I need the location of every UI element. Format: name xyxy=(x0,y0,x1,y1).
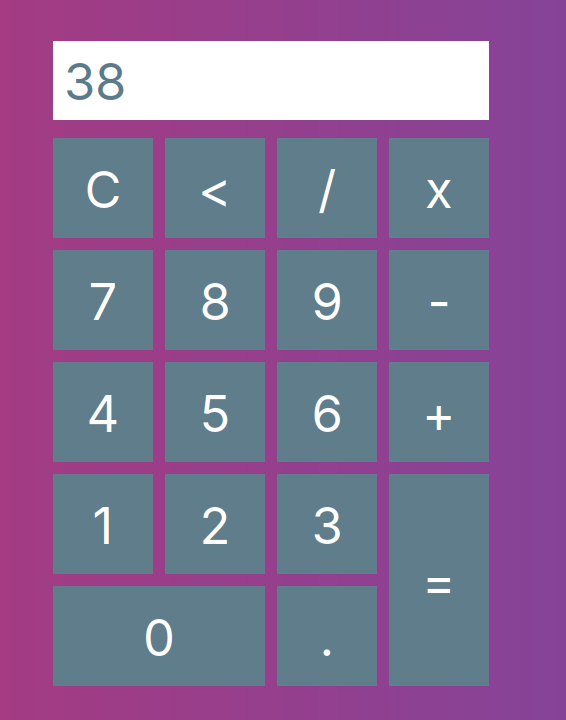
staticText: 38 xyxy=(64,51,126,112)
staticText: . xyxy=(319,607,334,668)
staticText: 5 xyxy=(199,383,230,444)
button[interactable]: + xyxy=(389,362,489,462)
button[interactable]: x xyxy=(389,138,489,238)
staticText: 0 xyxy=(143,607,175,668)
button[interactable]: 9 xyxy=(277,250,377,350)
staticText: 4 xyxy=(86,383,119,444)
button[interactable]: 8 xyxy=(165,250,265,350)
button[interactable]: < xyxy=(165,138,265,238)
staticText: / xyxy=(318,159,336,220)
button[interactable]: - xyxy=(389,250,489,350)
staticText: 1 xyxy=(92,495,113,556)
staticText: 9 xyxy=(311,271,342,332)
staticText: = xyxy=(422,551,456,612)
button[interactable]: 1 xyxy=(53,474,153,574)
staticText: 7 xyxy=(88,271,117,332)
staticText: + xyxy=(422,383,456,444)
button[interactable]: C xyxy=(53,138,153,238)
button[interactable]: / xyxy=(277,138,377,238)
staticText: - xyxy=(427,271,450,332)
staticText: 2 xyxy=(199,495,230,556)
staticText: 3 xyxy=(311,495,342,556)
staticText: 8 xyxy=(199,271,230,332)
staticText: x xyxy=(425,159,453,220)
staticText: 6 xyxy=(311,383,342,444)
button[interactable]: = xyxy=(389,474,489,686)
button[interactable]: 5 xyxy=(165,362,265,462)
button[interactable]: 6 xyxy=(277,362,377,462)
button[interactable]: 3 xyxy=(277,474,377,574)
staticText: < xyxy=(198,159,232,220)
button[interactable]: 4 xyxy=(53,362,153,462)
button[interactable]: 0 xyxy=(53,586,265,686)
button[interactable]: 7 xyxy=(53,250,153,350)
button[interactable]: . xyxy=(277,586,377,686)
staticText: C xyxy=(84,159,121,220)
button[interactable]: 2 xyxy=(165,474,265,574)
